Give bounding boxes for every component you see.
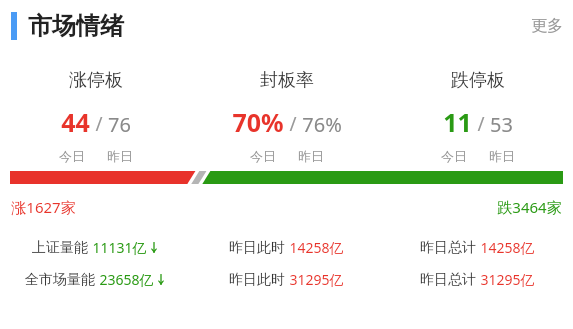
- staticText: 昨日总计: [420, 239, 476, 257]
- staticText: 76: [108, 111, 131, 138]
- staticText: 上证量能: [32, 239, 88, 257]
- staticText: 昨日: [107, 148, 133, 164]
- staticText: 涨1627家: [11, 197, 76, 217]
- button[interactable]: 涨跌家数比例: [0, 170, 573, 192]
- staticText: 14258亿: [289, 238, 344, 257]
- button[interactable]: 封板率: [191, 52, 382, 164]
- staticText: 跌3464家: [497, 197, 562, 217]
- staticText: 今日: [59, 148, 85, 164]
- staticText: 23658亿: [99, 270, 154, 289]
- staticText: 市场情绪: [28, 11, 124, 41]
- staticText: 76%: [302, 111, 342, 138]
- staticText: /: [95, 111, 103, 137]
- staticText: /: [477, 111, 485, 137]
- staticText: 31295亿: [480, 270, 535, 289]
- button[interactable]: 跌停板: [382, 52, 573, 164]
- staticText: 昨日总计: [420, 271, 476, 289]
- staticText: 更多: [531, 16, 563, 36]
- staticText: 44: [61, 105, 90, 139]
- button[interactable]: 市场情绪: [11, 11, 124, 41]
- staticText: 31295亿: [289, 270, 344, 289]
- staticText: 11: [443, 105, 472, 139]
- button[interactable]: 更多: [521, 10, 573, 42]
- staticText: 全市场量能: [25, 271, 95, 289]
- staticText: 11131亿: [92, 238, 147, 257]
- staticText: 昨日: [298, 148, 324, 164]
- staticText: 70%: [232, 105, 284, 139]
- staticText: 14258亿: [480, 238, 535, 257]
- staticText: 跌停板: [451, 69, 505, 92]
- button[interactable]: 涨停板: [0, 52, 191, 164]
- staticText: 涨停板: [69, 69, 123, 92]
- staticText: 53: [490, 111, 513, 138]
- staticText: 昨日此时: [229, 271, 285, 289]
- staticText: 昨日: [489, 148, 515, 164]
- staticText: 封板率: [260, 69, 314, 92]
- staticText: 昨日此时: [229, 239, 285, 257]
- staticText: 今日: [250, 148, 276, 164]
- staticText: /: [289, 111, 297, 137]
- staticText: 今日: [441, 148, 467, 164]
